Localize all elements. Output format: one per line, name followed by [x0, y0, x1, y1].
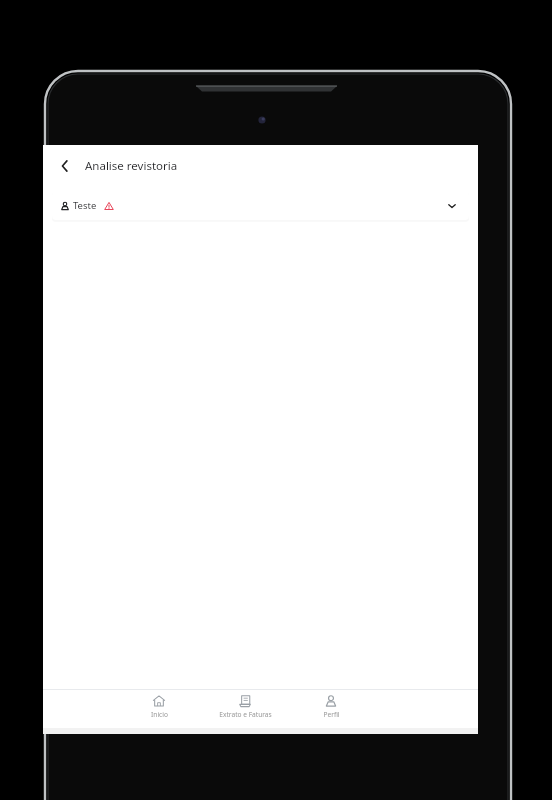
staticText: Analise revistoria: [85, 158, 178, 174]
button[interactable]: Extrato e Faturas: [197, 690, 293, 728]
other: Expandir: [443, 197, 461, 215]
button[interactable]: Voltar: [49, 150, 81, 182]
staticText: Teste: [73, 199, 97, 212]
button[interactable]: Inicio: [121, 690, 197, 728]
button[interactable]: Perfil: [293, 690, 369, 728]
button[interactable]: Teste: [52, 191, 469, 220]
staticText: Perfil: [323, 710, 340, 719]
staticText: Extrato e Faturas: [219, 710, 272, 719]
staticText: Inicio: [151, 710, 168, 719]
